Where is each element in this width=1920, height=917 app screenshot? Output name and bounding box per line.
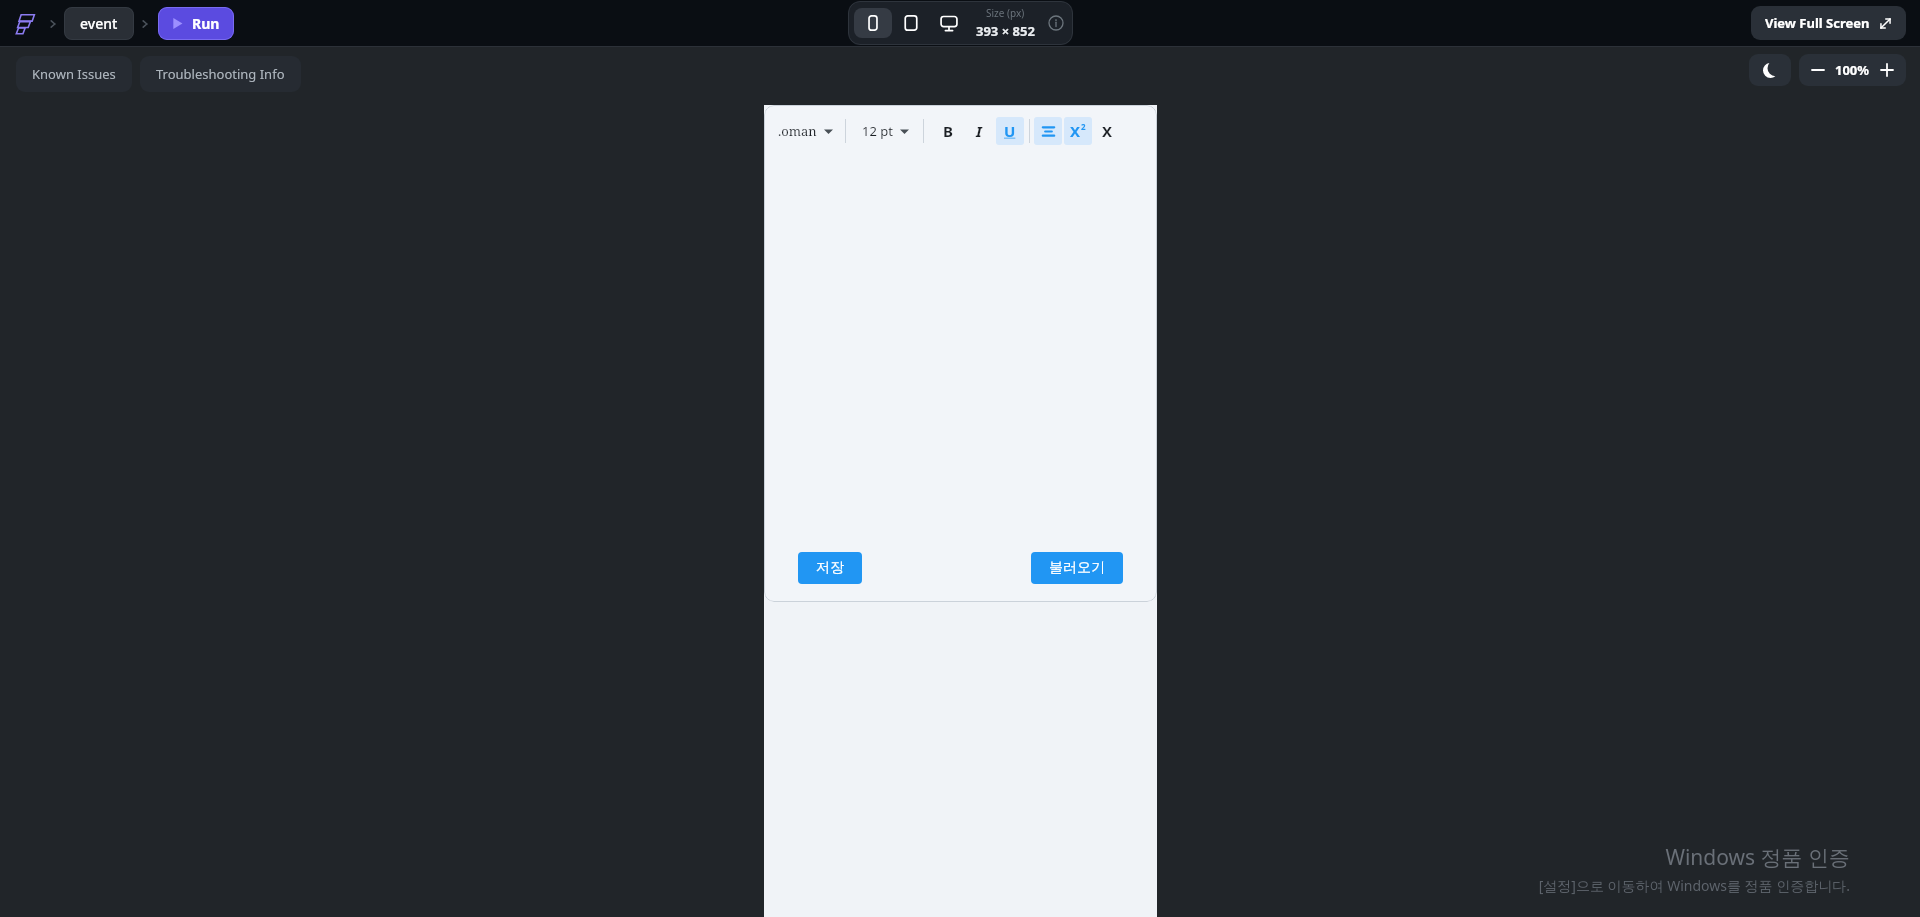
button[interactable]: Troubleshooting Info [140, 56, 301, 92]
button[interactable]: Zoom out [1809, 61, 1827, 79]
staticText: View Full Screen [1765, 14, 1870, 32]
button[interactable]: Clear formatting [1094, 118, 1120, 144]
staticText: [설정]으로 이동하여 Windows를 정품 인증합니다. [1538, 876, 1850, 895]
button[interactable]: Superscript [1064, 117, 1092, 145]
button[interactable]: Toggle dark mode [1749, 54, 1791, 86]
staticText: I [976, 121, 982, 141]
staticText: 불러오기 [1049, 559, 1105, 577]
button[interactable]: Info [1045, 12, 1067, 34]
button[interactable]: Home [10, 8, 42, 40]
button[interactable]: Underline [996, 117, 1024, 145]
button[interactable]: Zoom in [1878, 61, 1896, 79]
staticText: 393 × 852 [976, 22, 1035, 40]
staticText: B [943, 121, 953, 141]
staticText: Size (px) [986, 6, 1025, 20]
button[interactable]: Italic [965, 117, 993, 145]
staticText: 2 [1081, 121, 1086, 132]
staticText: 100% [1835, 61, 1870, 79]
staticText: 12 pt [862, 122, 893, 140]
button[interactable]: Run [158, 7, 234, 40]
staticText: 저장 [816, 559, 844, 577]
staticText: Known Issues [32, 65, 116, 83]
button[interactable]: event [64, 7, 134, 40]
button[interactable]: 저장 [798, 552, 862, 584]
staticText: event [80, 14, 118, 33]
button[interactable]: Phone size [854, 8, 892, 38]
button[interactable]: Strikethrough [1034, 117, 1062, 145]
staticText: X [1102, 121, 1113, 141]
button[interactable]: 12 pt [858, 116, 913, 146]
staticText: Run [192, 14, 220, 33]
staticText: U [1004, 121, 1016, 141]
staticText: .oman [778, 122, 817, 140]
button[interactable]: .oman [774, 116, 837, 146]
button[interactable]: Bold [934, 117, 962, 145]
staticText: X [1070, 121, 1081, 141]
staticText: Troubleshooting Info [156, 65, 285, 83]
staticText: Windows 정품 인증 [1665, 843, 1850, 872]
button[interactable]: View Full Screen [1751, 6, 1906, 40]
button[interactable]: Tablet size [892, 8, 930, 38]
button[interactable]: Known Issues [16, 56, 132, 92]
button[interactable]: 불러오기 [1031, 552, 1123, 584]
button[interactable]: Desktop size [930, 8, 968, 38]
